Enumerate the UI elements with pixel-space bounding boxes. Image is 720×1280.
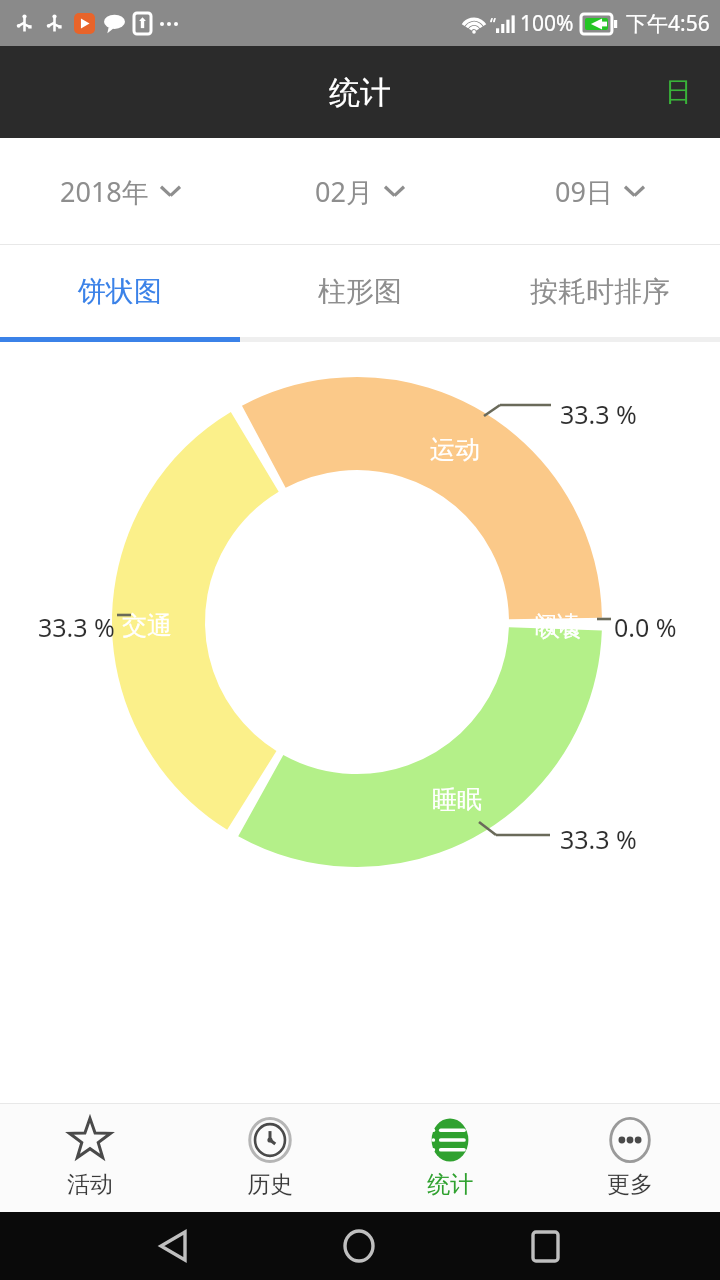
staticText: 2018年 — [60, 173, 149, 210]
staticText: 饮食 — [537, 614, 583, 643]
staticText: “ — [490, 13, 496, 35]
button[interactable]: Home — [333, 1219, 385, 1273]
staticText: 历史 — [247, 1170, 293, 1199]
staticText: 柱形图 — [318, 274, 402, 309]
staticText: 统计 — [329, 73, 391, 112]
staticText: 阅读 — [534, 610, 580, 639]
staticText: 更多 — [607, 1170, 653, 1199]
button[interactable]: 09日 — [480, 138, 720, 244]
staticText: 0.0 % — [614, 610, 677, 644]
staticText: 日 — [665, 75, 692, 109]
button[interactable]: Day range — [655, 67, 702, 117]
staticText: 统计 — [427, 1170, 473, 1199]
staticText: 交通 — [122, 610, 172, 641]
button[interactable]: 2018年 — [0, 138, 240, 244]
button[interactable]: 按耗时排序 — [480, 245, 720, 337]
button[interactable]: 更多 — [540, 1104, 720, 1212]
staticText: 运动 — [430, 434, 480, 465]
button[interactable]: 历史 — [180, 1104, 360, 1212]
staticText: 睡眠 — [432, 784, 482, 815]
staticText: 100% — [520, 9, 574, 38]
button[interactable]: Back — [149, 1220, 197, 1272]
staticText: 33.3 % — [560, 822, 637, 856]
staticText: 按耗时排序 — [530, 274, 670, 309]
staticText: 33.3 % — [38, 610, 115, 644]
staticText: 下午4:56 — [626, 9, 710, 38]
button[interactable]: 统计 — [360, 1104, 540, 1212]
staticText: 饼状图 — [78, 274, 162, 309]
button[interactable]: 柱形图 — [240, 245, 480, 337]
button[interactable]: 饼状图 — [0, 245, 240, 337]
staticText: 33.3 % — [560, 397, 637, 431]
button[interactable]: 02月 — [240, 138, 480, 244]
staticText: 活动 — [67, 1170, 113, 1199]
staticText: 02月 — [315, 173, 373, 210]
button[interactable]: Recents — [521, 1220, 570, 1273]
staticText: 09日 — [555, 173, 613, 210]
button[interactable]: 活动 — [0, 1104, 180, 1212]
